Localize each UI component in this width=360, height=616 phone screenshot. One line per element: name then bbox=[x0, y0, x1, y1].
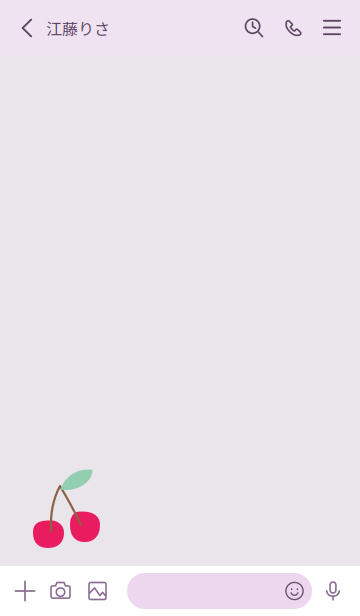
button[interactable]: Call bbox=[273, 3, 313, 53]
button[interactable]: Message bbox=[127, 573, 312, 609]
staticText: 江藤りさ bbox=[46, 16, 110, 40]
button[interactable]: Search bbox=[233, 3, 273, 53]
button[interactable]: Back bbox=[13, 6, 41, 50]
button[interactable]: Camera bbox=[42, 566, 79, 616]
button[interactable]: Photos bbox=[79, 566, 116, 616]
button[interactable]: Voice message bbox=[318, 566, 348, 616]
button[interactable]: Menu bbox=[313, 3, 351, 53]
button[interactable]: Add bbox=[8, 566, 42, 616]
